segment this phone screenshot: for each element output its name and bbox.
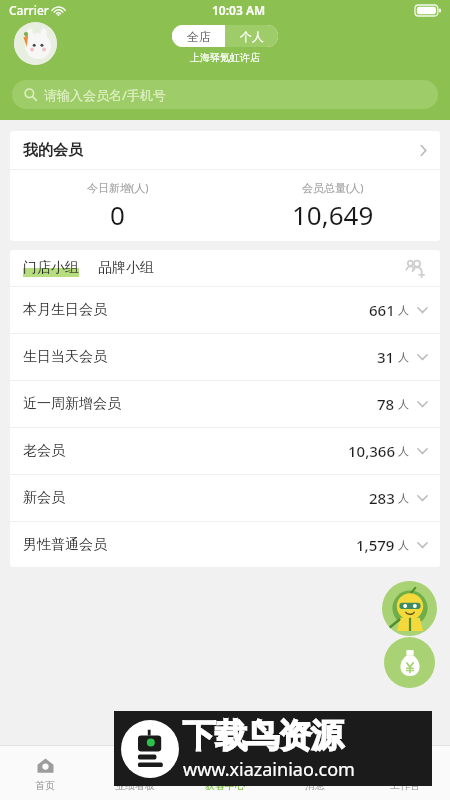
button[interactable]: Add group xyxy=(401,255,427,281)
staticText: 获客中心 xyxy=(205,779,245,792)
button[interactable]: 门店小组 xyxy=(23,259,79,277)
button[interactable]: 会员总量(人) xyxy=(225,170,440,241)
staticText: 人 xyxy=(398,350,409,364)
staticText: 业绩看板 xyxy=(115,779,155,792)
button[interactable]: 全店 xyxy=(172,25,225,47)
button[interactable]: 近一周新增会员 xyxy=(10,381,440,427)
staticText: 老会员 xyxy=(23,442,65,460)
staticText: 人 xyxy=(398,444,409,458)
button[interactable]: 生日当天会员 xyxy=(10,334,440,380)
button[interactable]: 品牌小组 xyxy=(98,259,154,277)
staticText: 10,366 xyxy=(348,441,395,461)
button[interactable]: 业绩看板 xyxy=(90,746,180,800)
staticText: 生日当天会员 xyxy=(23,348,107,366)
button[interactable]: 消息 xyxy=(270,746,360,800)
staticText: 661 xyxy=(369,300,395,320)
button[interactable]: 个人 xyxy=(225,25,278,47)
staticText: 全店 xyxy=(187,29,211,44)
button[interactable]: 获客中心 xyxy=(180,746,270,800)
staticText: 个人 xyxy=(240,29,264,44)
staticText: 上海驿氪虹许店 xyxy=(190,51,260,64)
button[interactable]: 请输入会员名/手机号 xyxy=(12,80,438,109)
button[interactable]: Assistant xyxy=(382,581,437,636)
staticText: 工作台 xyxy=(390,779,420,792)
staticText: 我的会员 xyxy=(23,141,83,160)
staticText: www.xiazainiao.com xyxy=(183,757,355,782)
button[interactable]: 新会员 xyxy=(10,475,440,521)
staticText: 会员总量(人) xyxy=(302,180,364,195)
staticText: 78 xyxy=(377,394,395,414)
button[interactable]: Profile xyxy=(14,22,57,65)
staticText: 人 xyxy=(398,538,409,552)
staticText: 31 xyxy=(377,347,395,367)
staticText: 人 xyxy=(398,397,409,411)
staticText: 近一周新增会员 xyxy=(23,395,121,413)
staticText: 请输入会员名/手机号 xyxy=(44,86,166,104)
button[interactable]: 工作台 xyxy=(360,746,450,800)
staticText: 今日新增(人) xyxy=(87,180,149,195)
button[interactable]: 本月生日会员 xyxy=(10,287,440,333)
staticText: 首页 xyxy=(35,779,55,792)
staticText: 10:03 AM xyxy=(212,2,266,18)
staticText: 1,579 xyxy=(356,535,395,555)
staticText: 10,649 xyxy=(292,197,374,232)
staticText: 消息 xyxy=(305,779,325,792)
staticText: 0 xyxy=(110,197,125,232)
button[interactable]: 首页 xyxy=(0,746,90,800)
button[interactable]: 我的会员 xyxy=(10,131,440,169)
staticText: 新会员 xyxy=(23,489,65,507)
button[interactable]: 老会员 xyxy=(10,428,440,474)
button[interactable]: Revenue xyxy=(384,637,435,688)
staticText: 283 xyxy=(369,488,395,508)
staticText: 人 xyxy=(398,491,409,505)
button[interactable]: 男性普通会员 xyxy=(10,522,440,567)
staticText: 下载鸟资源 xyxy=(183,715,343,757)
staticText: 人 xyxy=(398,303,409,317)
staticText: 品牌小组 xyxy=(98,259,154,277)
staticText: Carrier xyxy=(9,2,49,18)
staticText: 门店小组 xyxy=(23,259,79,277)
button[interactable]: 今日新增(人) xyxy=(10,170,225,241)
staticText: 本月生日会员 xyxy=(23,301,107,319)
staticText: 男性普通会员 xyxy=(23,536,107,554)
